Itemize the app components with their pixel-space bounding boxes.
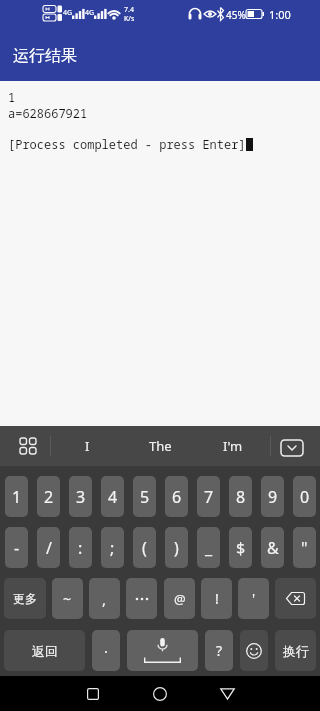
staticText: [Process completed - press Enter] — [8, 136, 246, 152]
button[interactable]: , — [89, 578, 120, 619]
staticText: 返回 — [32, 643, 58, 659]
button[interactable]: " — [293, 527, 316, 568]
staticText: 6 — [172, 486, 182, 508]
staticText: 7 — [204, 486, 214, 508]
staticText: & — [267, 537, 279, 559]
button[interactable]: & — [261, 527, 284, 568]
staticText: 更多 — [13, 591, 37, 606]
staticText: ) — [174, 537, 179, 559]
button[interactable] — [15, 433, 41, 459]
button[interactable]: ( — [133, 527, 156, 568]
staticText: 0 — [300, 486, 310, 508]
staticText: K/s — [124, 14, 135, 24]
staticText: 3 — [76, 486, 86, 508]
button[interactable]: 更多 — [4, 578, 46, 619]
staticText: I'm — [223, 437, 243, 455]
staticText: 1 — [12, 486, 22, 508]
button[interactable]: _ — [197, 527, 220, 568]
staticText: · — [104, 641, 109, 661]
staticText: @ — [174, 590, 186, 608]
button[interactable]: 9 — [261, 476, 284, 517]
button[interactable]: I — [62, 426, 112, 466]
staticText: 4G — [85, 8, 95, 18]
staticText: 4 — [108, 486, 118, 508]
staticText: 运行结果 — [13, 46, 77, 66]
staticText: 2 — [44, 486, 54, 508]
staticText: 1 — [8, 89, 16, 105]
button[interactable]: / — [37, 527, 60, 568]
button[interactable]: I'm — [208, 426, 258, 466]
staticText: ( — [142, 537, 147, 559]
button[interactable]: ) — [165, 527, 188, 568]
button[interactable] — [77, 677, 109, 710]
staticText: The — [149, 437, 172, 455]
button[interactable] — [127, 630, 198, 671]
staticText: 4G — [63, 8, 73, 18]
button[interactable]: 3 — [69, 476, 92, 517]
button[interactable]: ; — [101, 527, 124, 568]
staticText: a=628667921 — [8, 105, 88, 121]
button[interactable] — [126, 578, 157, 619]
button[interactable] — [144, 677, 176, 710]
button[interactable] — [240, 630, 268, 671]
button[interactable]: ' — [238, 578, 269, 619]
staticText: : — [78, 537, 83, 559]
staticText: ? — [216, 641, 223, 660]
button[interactable]: The — [135, 426, 185, 466]
button[interactable]: 8 — [229, 476, 252, 517]
staticText: $ — [236, 537, 246, 559]
staticText: ; — [110, 537, 115, 559]
button[interactable]: @ — [164, 578, 195, 619]
button[interactable] — [278, 436, 306, 460]
button[interactable]: 4 — [101, 476, 124, 517]
staticText: ~ — [63, 589, 72, 608]
button[interactable]: · — [92, 630, 120, 671]
staticText: 8 — [236, 486, 246, 508]
button[interactable]: ~ — [52, 578, 83, 619]
staticText: ' — [252, 589, 256, 608]
button[interactable]: 0 — [293, 476, 316, 517]
button[interactable]: 1 — [5, 476, 28, 517]
staticText: - — [14, 537, 20, 559]
button[interactable]: 返回 — [4, 630, 85, 671]
button[interactable]: 换行 — [275, 630, 316, 671]
button[interactable] — [211, 677, 243, 710]
button[interactable]: 2 — [37, 476, 60, 517]
button[interactable]: ? — [205, 630, 233, 671]
button[interactable]: : — [69, 527, 92, 568]
staticText: 5 — [140, 486, 150, 508]
staticText: 7.4 — [124, 5, 134, 15]
staticText: 换行 — [283, 643, 309, 659]
staticText: / — [46, 537, 52, 559]
button[interactable]: 7 — [197, 476, 220, 517]
button[interactable] — [275, 578, 316, 619]
staticText: , — [102, 589, 107, 609]
staticText: 9 — [268, 486, 278, 508]
button[interactable]: 5 — [133, 476, 156, 517]
staticText: 1:00 — [269, 7, 291, 22]
button[interactable]: ! — [201, 578, 232, 619]
button[interactable]: 6 — [165, 476, 188, 517]
staticText: " — [301, 537, 308, 559]
button[interactable]: $ — [229, 527, 252, 568]
staticText: 45% — [226, 8, 246, 22]
button[interactable]: - — [5, 527, 28, 568]
staticText: I — [85, 437, 90, 455]
staticText: _ — [205, 537, 213, 559]
staticText: ! — [215, 589, 219, 608]
